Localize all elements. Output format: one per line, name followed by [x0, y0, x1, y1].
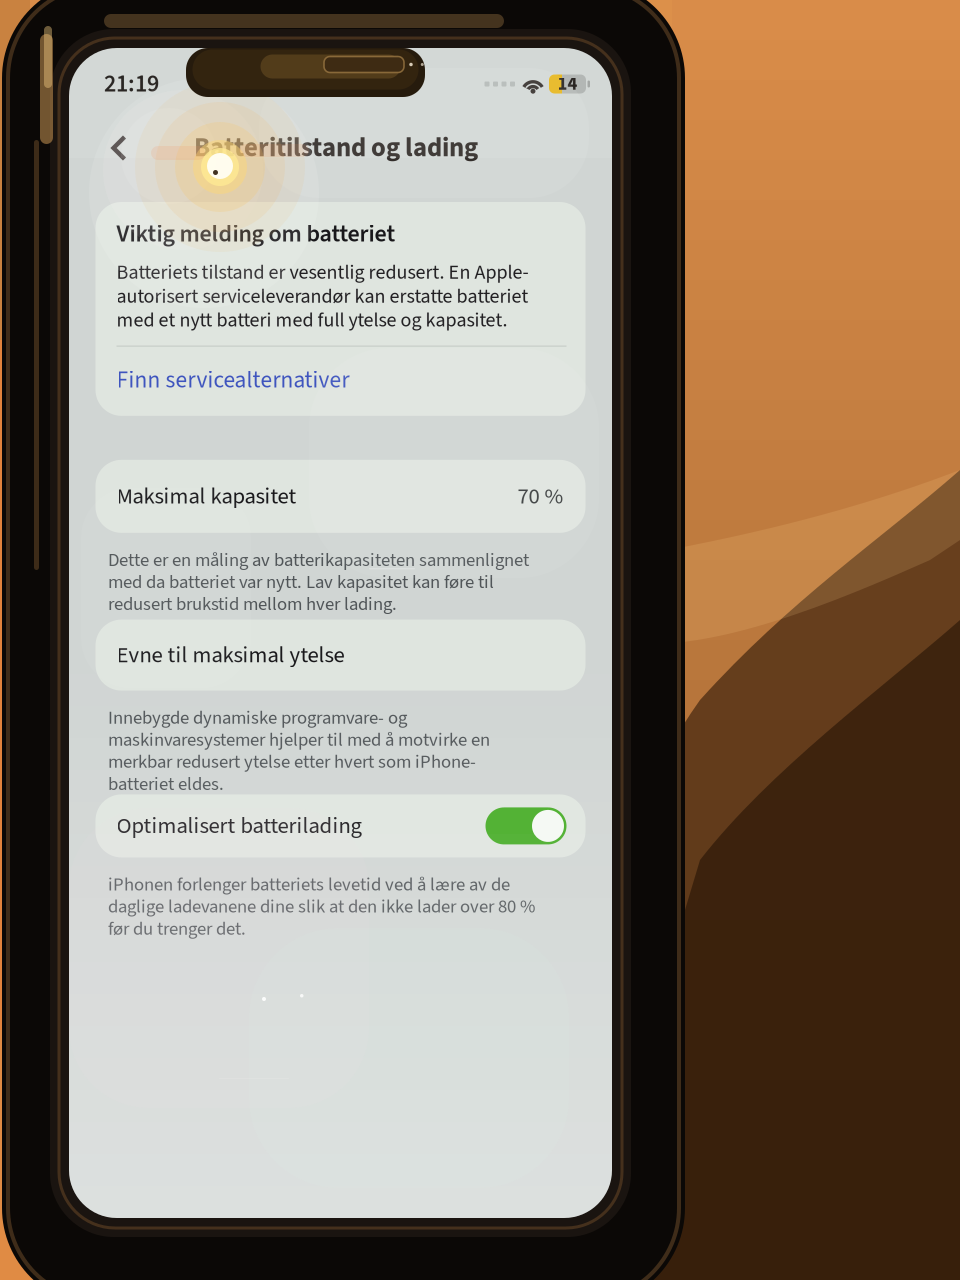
staticText: 21:19	[104, 67, 159, 101]
staticText: iPhonen forlenger batteriets levetid ved…	[108, 871, 535, 942]
button[interactable]: Tilbake	[110, 121, 160, 175]
button[interactable]: Finn servicealternativer	[116, 347, 566, 397]
staticText: Batteriets tilstand er vesentlig reduser…	[116, 258, 528, 335]
staticText: Viktig melding om batteriet	[116, 217, 395, 251]
staticText: Batteritilstand og lading	[194, 129, 478, 167]
staticText: 14	[557, 71, 577, 97]
staticText: Finn servicealternativer	[116, 364, 349, 397]
staticText: Innebygde dynamiske programvare- og mask…	[108, 705, 490, 797]
staticText: Optimalisert batterilading	[116, 810, 361, 842]
staticText: Dette er en måling av batterikapasiteten…	[108, 547, 529, 617]
staticText: 70 %	[517, 480, 563, 512]
staticText: Evne til maksimal ytelse	[116, 639, 344, 671]
staticText: Maksimal kapasitet	[116, 480, 296, 512]
button[interactable]: Optimalisert batterilading	[485, 807, 566, 844]
